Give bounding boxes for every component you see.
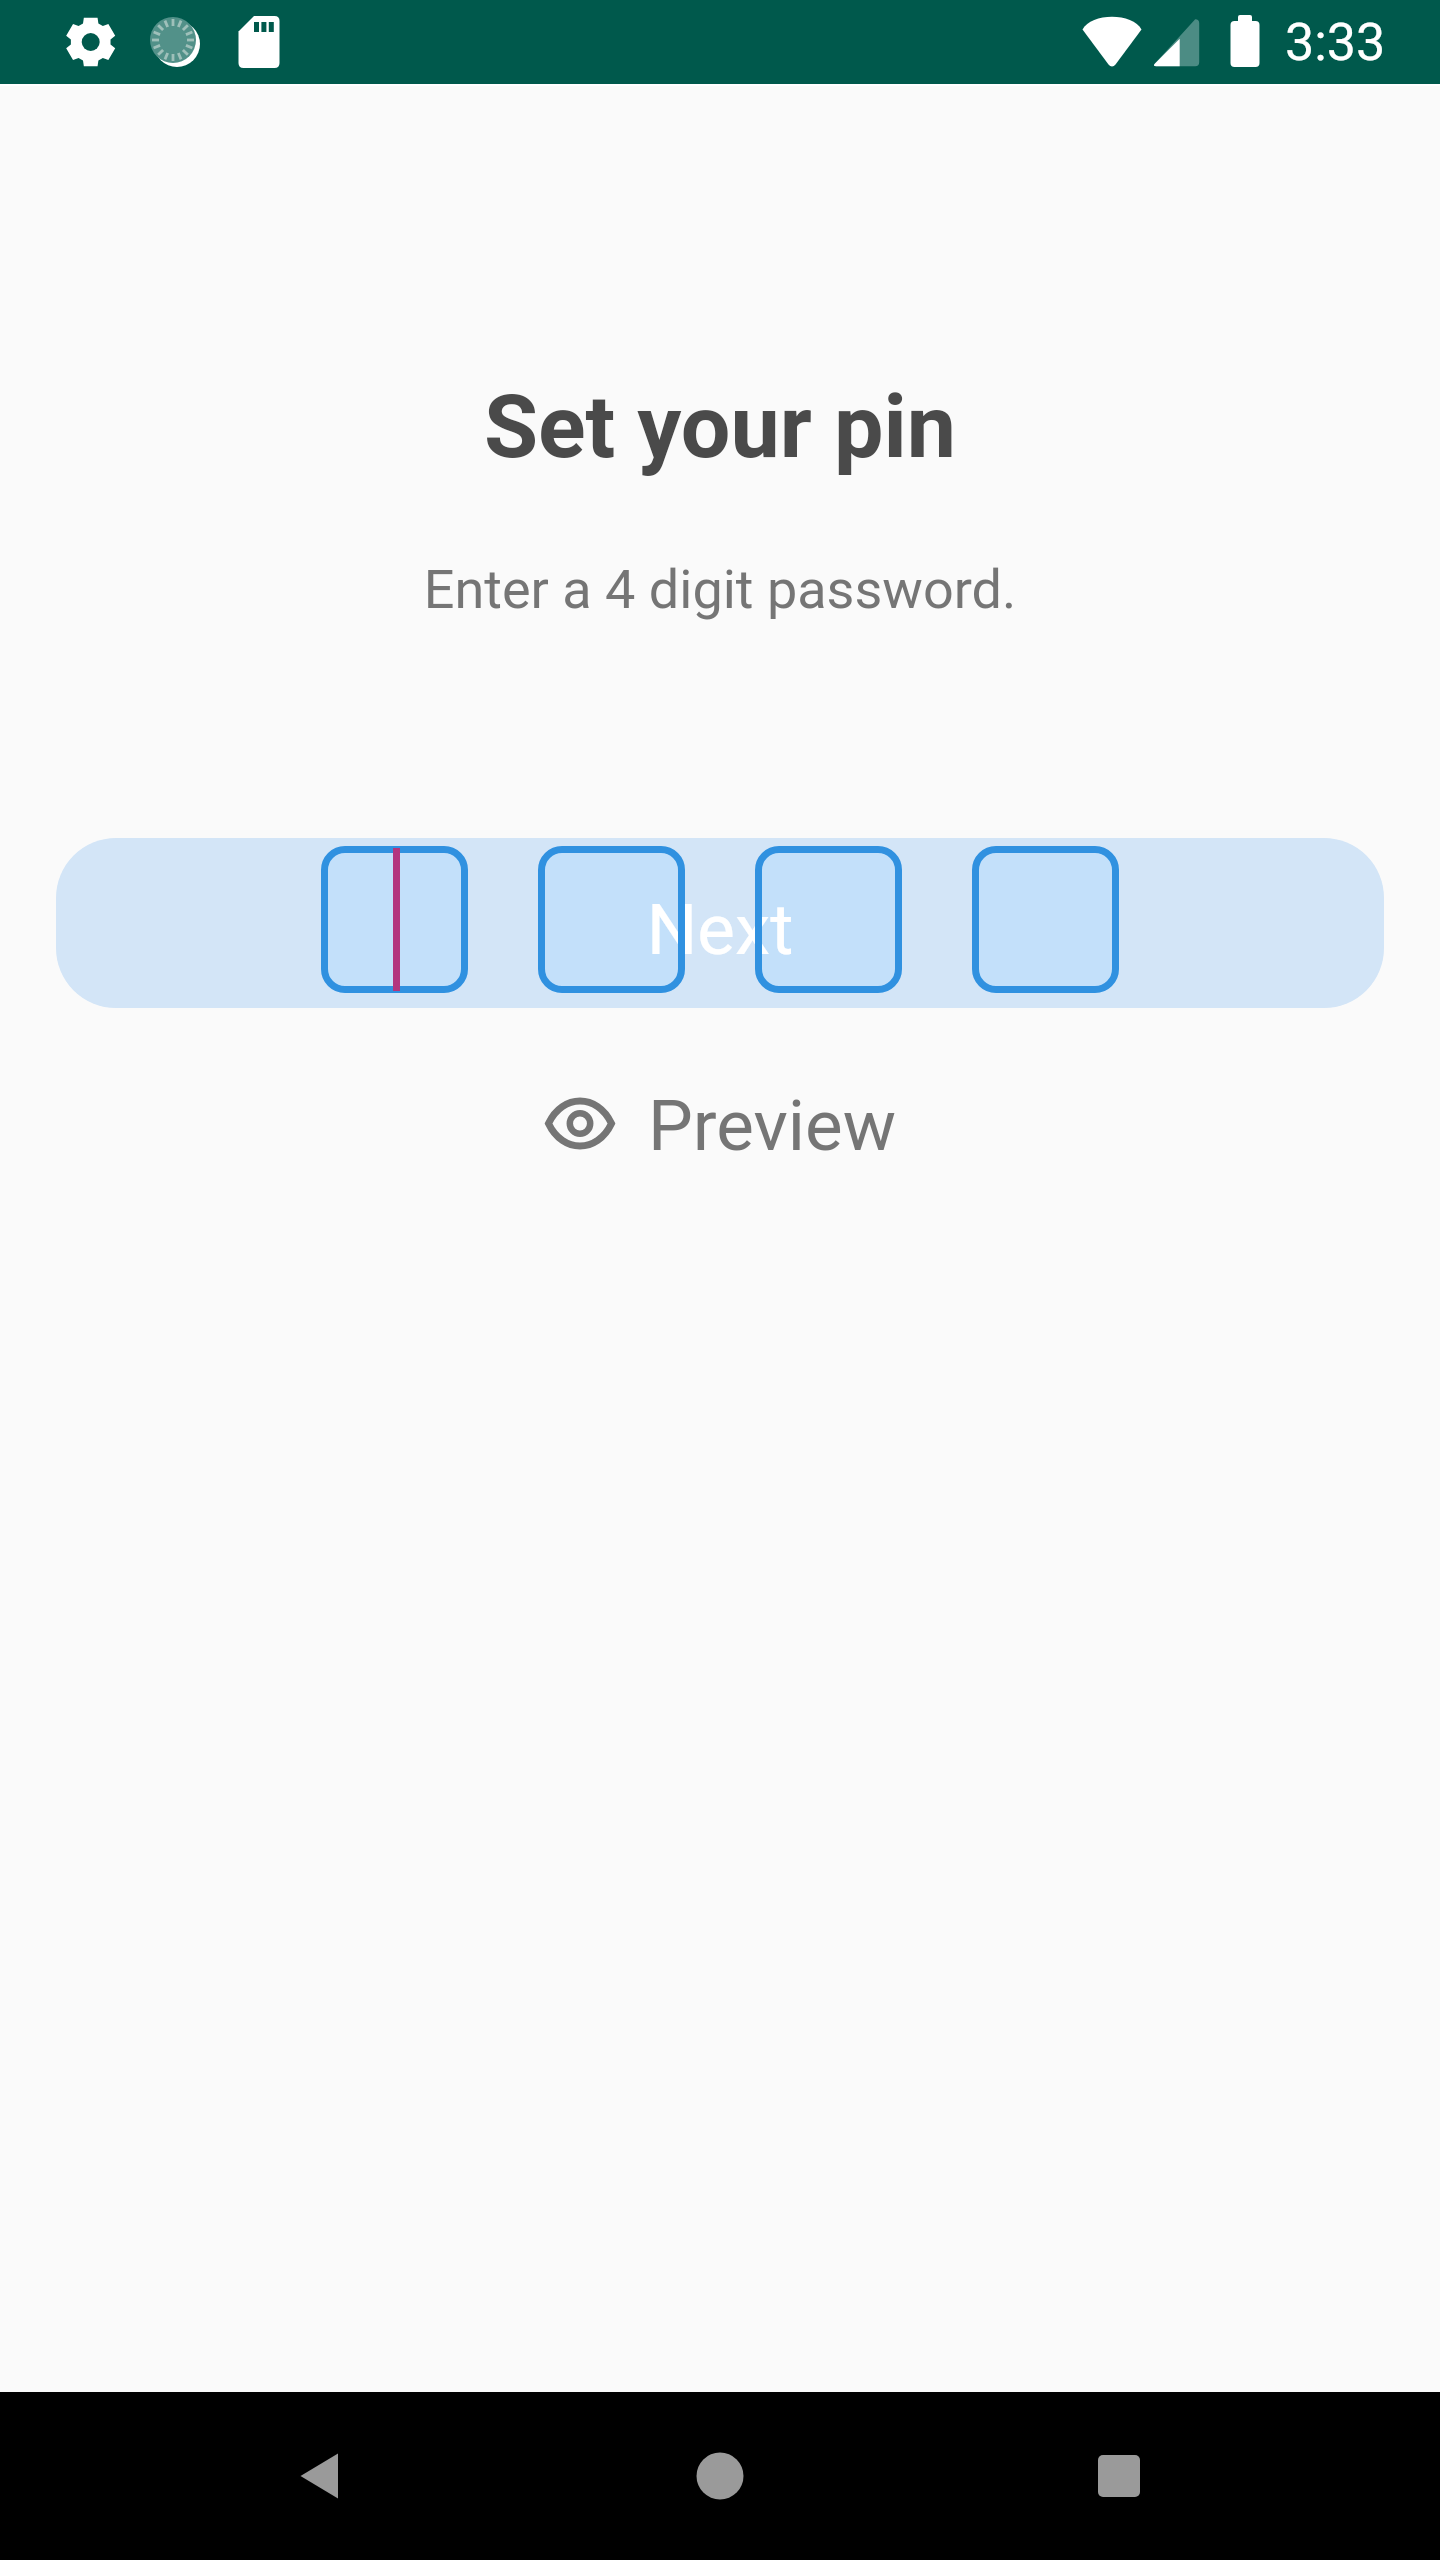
button[interactable]: PIN digit 4 <box>972 846 1119 993</box>
button[interactable]: PIN digit 1 <box>321 846 468 993</box>
button[interactable]: PIN digit 3 <box>755 846 902 993</box>
staticText: Enter a 4 digit password. <box>0 558 1440 621</box>
button[interactable]: Next <box>56 838 1384 1008</box>
staticText: Set your pin <box>0 375 1440 478</box>
button[interactable]: Recent apps <box>1023 2392 1215 2560</box>
button[interactable]: Back <box>224 2392 416 2560</box>
button[interactable]: Preview <box>541 1086 901 1166</box>
staticText: 3:33 <box>1285 12 1386 73</box>
button[interactable]: Home <box>624 2392 816 2560</box>
staticText: Preview <box>648 1084 897 1164</box>
staticText: Next <box>0 888 1440 971</box>
button[interactable]: PIN digit 2 <box>538 846 685 993</box>
